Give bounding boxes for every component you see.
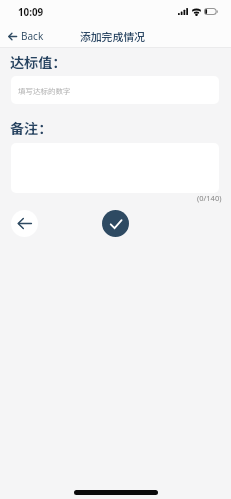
staticText: 填写达标的数字 (18, 85, 71, 96)
staticText: (0/140) (197, 193, 222, 203)
button[interactable]: Back (5, 27, 47, 45)
button[interactable]: 填写达标的数字 (11, 76, 219, 104)
staticText: 备注： (10, 118, 53, 138)
staticText: 添加完成情况 (80, 28, 145, 44)
button[interactable]: Back (11, 210, 38, 237)
button[interactable]: Confirm (102, 210, 129, 237)
staticText: Back (21, 29, 44, 43)
staticText: 10:09 (18, 6, 44, 19)
staticText: 达标值： (10, 52, 67, 72)
